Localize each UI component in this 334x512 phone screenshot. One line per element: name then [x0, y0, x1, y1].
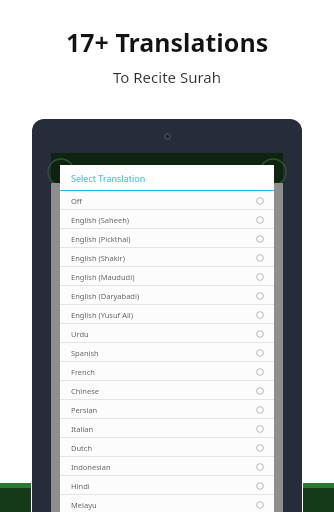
staticText: Italian — [71, 424, 94, 434]
other: Front camera — [164, 133, 171, 140]
staticText: English (Daryabadi) — [71, 291, 140, 301]
button[interactable]: English (Saheeh) — [60, 210, 274, 229]
button[interactable]: Hindi — [60, 476, 274, 495]
button[interactable]: Melayu — [60, 495, 274, 512]
staticText: Select Translation — [71, 172, 146, 184]
staticText: English (Saheeh) — [71, 215, 130, 225]
staticText: Urdu — [71, 329, 89, 339]
staticText: To Recite Surah — [113, 67, 221, 87]
button[interactable]: Indonesian — [60, 457, 274, 476]
button[interactable]: Dutch — [60, 438, 274, 457]
button[interactable]: Chinese — [60, 381, 274, 400]
button[interactable]: English (Daryabadi) — [60, 286, 274, 305]
button[interactable]: Persian — [60, 400, 274, 419]
staticText: English (Yusuf Ali) — [71, 310, 134, 320]
button[interactable]: French — [60, 362, 274, 381]
staticText: 17+ Translations — [66, 25, 269, 59]
button[interactable]: English (Pickthal) — [60, 229, 274, 248]
button[interactable]: Spanish — [60, 343, 274, 362]
staticText: Chinese — [71, 386, 99, 396]
staticText: English (Pickthal) — [71, 234, 131, 244]
staticText: English (Shakir) — [71, 253, 125, 263]
button[interactable]: English (Shakir) — [60, 248, 274, 267]
button[interactable]: English (Maududi) — [60, 267, 274, 286]
staticText: Persian — [71, 405, 98, 415]
button[interactable]: Urdu — [60, 324, 274, 343]
staticText: Indonesian — [71, 462, 111, 472]
staticText: English (Maududi) — [71, 272, 135, 282]
staticText: Melayu — [71, 500, 97, 510]
button[interactable]: Off — [60, 191, 274, 210]
staticText: French — [71, 367, 95, 377]
staticText: Hindi — [71, 481, 90, 491]
staticText: Dutch — [71, 443, 93, 453]
button[interactable]: Italian — [60, 419, 274, 438]
staticText: Off — [71, 196, 83, 206]
staticText: Spanish — [71, 348, 99, 358]
button[interactable]: English (Yusuf Ali) — [60, 305, 274, 324]
